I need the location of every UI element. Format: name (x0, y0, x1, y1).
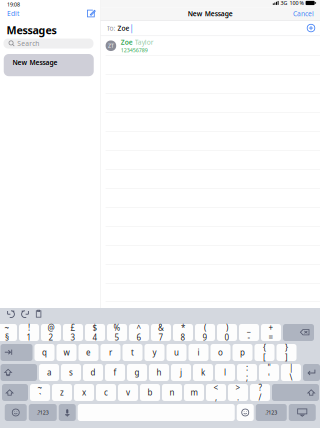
staticText: ^ (136, 322, 141, 333)
button[interactable]: Emoji (237, 404, 254, 421)
button[interactable]: " (259, 364, 279, 381)
button[interactable]: r (100, 344, 120, 361)
staticText: * (181, 322, 185, 333)
button[interactable]: d (83, 364, 103, 381)
button[interactable]: * (173, 324, 193, 341)
button[interactable]: z (52, 384, 72, 401)
staticText: g (134, 367, 139, 378)
button[interactable]: h (149, 364, 169, 381)
button[interactable]: Compose (87, 9, 96, 17)
staticText: + (268, 322, 273, 333)
staticText: Cancel (293, 9, 314, 18)
staticText: ] (285, 352, 288, 363)
button[interactable]: l (215, 364, 235, 381)
button[interactable]: ( (195, 324, 215, 341)
button[interactable]: Emoji (5, 404, 27, 421)
button[interactable]: ^ (129, 324, 149, 341)
button[interactable]: b (140, 384, 160, 401)
button[interactable]: e (78, 344, 98, 361)
button[interactable]: Shift (272, 384, 319, 401)
staticText: j (180, 367, 182, 378)
button[interactable]: c (96, 384, 116, 401)
button[interactable]: + (261, 324, 281, 341)
staticText: d (90, 367, 95, 378)
button[interactable]: m (184, 384, 204, 401)
staticText: .?123 (265, 409, 277, 416)
button[interactable]: { (254, 344, 274, 361)
staticText: b (147, 387, 152, 398)
button[interactable]: £ (63, 324, 83, 341)
staticText: 123456789 (121, 47, 148, 54)
button[interactable]: Dictate (59, 404, 76, 421)
staticText: New Message (13, 58, 58, 67)
button[interactable]: Cancel (291, 8, 316, 19)
staticText: s (69, 367, 73, 378)
button[interactable]: j (171, 364, 191, 381)
button[interactable]: Paste (32, 307, 46, 321)
button[interactable]: Return (303, 364, 320, 381)
button[interactable]: ~ (0, 324, 17, 341)
button[interactable]: f (105, 364, 125, 381)
button[interactable]: .?123 (29, 404, 57, 421)
staticText: u (174, 347, 179, 358)
button[interactable]: x (74, 384, 94, 401)
button[interactable]: .?123 (256, 404, 287, 421)
button[interactable]: ~ (30, 384, 50, 401)
staticText: .?123 (37, 409, 49, 416)
staticText: ' (268, 372, 270, 383)
button[interactable]: y (144, 344, 164, 361)
button[interactable]: Undo (4, 307, 18, 321)
button[interactable]: _ (239, 324, 259, 341)
button[interactable]: % (107, 324, 127, 341)
button[interactable]: t (122, 344, 142, 361)
button[interactable]: p (232, 344, 252, 361)
button[interactable]: @ (41, 324, 61, 341)
button[interactable]: & (151, 324, 171, 341)
button[interactable]: Shift (2, 384, 28, 401)
button[interactable]: Edit (5, 8, 21, 19)
staticText: < (213, 382, 218, 393)
button[interactable]: } (276, 344, 296, 361)
button[interactable]: g (127, 364, 147, 381)
button[interactable]: Hide Keyboard (289, 404, 316, 421)
button[interactable]: ? (250, 384, 270, 401)
staticText: 9 (202, 332, 207, 343)
button[interactable]: k (193, 364, 213, 381)
staticText: f (113, 367, 116, 378)
button[interactable]: $ (85, 324, 105, 341)
button[interactable]: ) (217, 324, 237, 341)
button[interactable]: a (39, 364, 59, 381)
staticText: Search (17, 39, 39, 48)
button[interactable]: > (228, 384, 248, 401)
button[interactable]: u (166, 344, 186, 361)
staticText: c (104, 387, 108, 398)
button[interactable]: : (237, 364, 257, 381)
staticText: 6 (136, 332, 141, 343)
button[interactable]: Tab (0, 344, 32, 361)
button[interactable]: Caps Lock (0, 364, 37, 381)
button[interactable]: i (188, 344, 208, 361)
button[interactable]: New Message (4, 54, 94, 76)
button[interactable]: Add contact (307, 24, 315, 32)
button[interactable]: ! (19, 324, 39, 341)
staticText: w (63, 347, 69, 358)
button[interactable]: | (281, 364, 301, 381)
button[interactable]: n (162, 384, 182, 401)
button[interactable]: q (34, 344, 54, 361)
button[interactable]: o (210, 344, 230, 361)
staticText: ZT (108, 42, 114, 49)
staticText: v (126, 387, 130, 398)
button[interactable]: ZT (101, 36, 320, 55)
button[interactable]: Delete (283, 324, 314, 341)
button[interactable]: w (56, 344, 76, 361)
staticText: n (169, 387, 174, 398)
button[interactable]: v (118, 384, 138, 401)
staticText: ` (39, 392, 41, 403)
button[interactable]: Redo (18, 307, 32, 321)
button[interactable]: s (61, 364, 81, 381)
button[interactable]: < (206, 384, 226, 401)
staticText: Messages (6, 23, 56, 37)
staticText: r (109, 347, 112, 358)
staticText: / (258, 392, 261, 403)
